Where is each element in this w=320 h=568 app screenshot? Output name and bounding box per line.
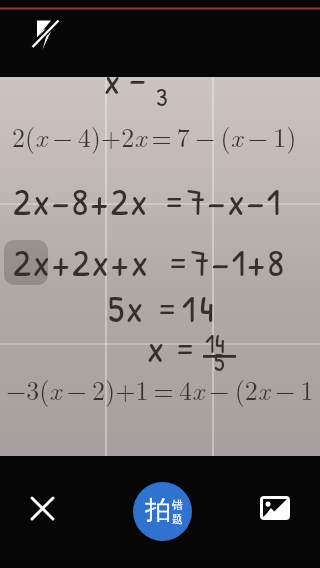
button[interactable]: 拍 [133, 482, 192, 541]
staticText: 3 [156, 79, 168, 114]
staticText: 2(x − 4)+2x = 7 − (x − 1) [12, 118, 297, 155]
staticText: =7−x−1 [163, 175, 283, 226]
button[interactable]: Selected expression [4, 240, 48, 285]
staticText: =14 [156, 282, 218, 333]
staticText: 题 [172, 512, 183, 526]
staticText: x [147, 322, 167, 373]
staticText: x [104, 56, 121, 105]
staticText: 5x [108, 282, 146, 333]
staticText: 14 [205, 325, 225, 362]
staticText: 错 [172, 498, 183, 512]
staticText: = [174, 322, 198, 373]
button[interactable]: Close [20, 486, 65, 531]
staticText: −3(x − 2)+1 = 4x − (2x − 1 [6, 371, 314, 408]
button[interactable]: Gallery [255, 486, 295, 530]
staticText: 5 [214, 345, 225, 379]
staticText: 2x−8+2x [13, 175, 150, 226]
button[interactable]: Flash off [21, 10, 63, 60]
staticText: 拍 [145, 494, 171, 527]
staticText: 2x+2x+x [13, 236, 151, 287]
staticText: =7−1+8 [167, 236, 286, 287]
staticText: − [129, 53, 146, 102]
